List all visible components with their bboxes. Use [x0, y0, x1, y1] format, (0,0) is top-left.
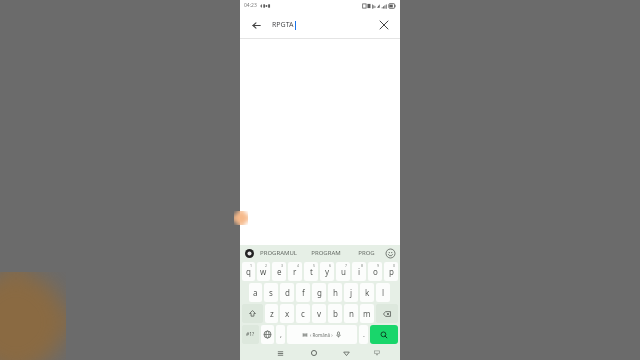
- button[interactable]: u: [336, 262, 350, 281]
- staticText: z: [270, 308, 274, 319]
- button[interactable]: o: [368, 262, 382, 281]
- button[interactable]: t: [304, 262, 318, 281]
- staticText: w: [260, 266, 267, 277]
- button[interactable]: e: [272, 262, 286, 281]
- button[interactable]: d: [280, 283, 294, 302]
- staticText: l: [382, 287, 385, 298]
- button[interactable]: ‹ Română ›: [287, 325, 357, 344]
- button[interactable]: p: [384, 262, 398, 281]
- staticText: x: [285, 308, 290, 319]
- button[interactable]: PROGRAMUL: [255, 245, 302, 261]
- staticText: PROGRAM: [311, 249, 341, 257]
- button[interactable]: #1?: [242, 325, 259, 344]
- button[interactable]: j: [344, 283, 358, 302]
- staticText: 0: [393, 263, 396, 268]
- staticText: RPGTA: [272, 20, 294, 30]
- button[interactable]: Recent apps: [264, 346, 297, 360]
- staticText: PROGRAMUL: [260, 249, 297, 257]
- staticText: #1?: [246, 331, 255, 338]
- staticText: p: [389, 266, 394, 277]
- button[interactable]: q: [242, 262, 255, 281]
- staticText: .: [363, 330, 365, 340]
- staticText: 4: [297, 263, 300, 268]
- button[interactable]: Change keyboard language: [261, 325, 274, 344]
- staticText: g: [317, 287, 322, 298]
- staticText: n: [349, 308, 354, 319]
- staticText: a: [253, 287, 258, 298]
- staticText: q: [246, 266, 251, 277]
- staticText: b: [333, 308, 338, 319]
- button[interactable]: g: [312, 283, 326, 302]
- staticText: 7: [345, 263, 348, 268]
- staticText: 04:23: [244, 2, 257, 9]
- button[interactable]: c: [296, 304, 310, 323]
- button[interactable]: n: [344, 304, 358, 323]
- staticText: k: [365, 287, 370, 298]
- button[interactable]: m: [360, 304, 374, 323]
- staticText: t: [310, 266, 313, 277]
- staticText: 5: [313, 263, 316, 268]
- staticText: 2: [265, 263, 268, 268]
- staticText: ,: [280, 330, 282, 340]
- button[interactable]: r: [288, 262, 302, 281]
- button[interactable]: Hide keyboard: [363, 346, 391, 360]
- button[interactable]: Search: [370, 325, 398, 344]
- button[interactable]: Back: [330, 346, 363, 360]
- staticText: 1: [250, 263, 253, 268]
- button[interactable]: s: [264, 283, 278, 302]
- button[interactable]: PROG: [349, 245, 384, 261]
- button[interactable]: .: [359, 325, 368, 344]
- staticText: 9: [377, 263, 380, 268]
- button[interactable]: Back: [246, 15, 266, 35]
- button[interactable]: i: [352, 262, 366, 281]
- button[interactable]: h: [328, 283, 342, 302]
- button[interactable]: Google: [243, 247, 255, 259]
- button[interactable]: Backspace: [376, 304, 398, 323]
- staticText: 6: [329, 263, 332, 268]
- staticText: v: [317, 308, 322, 319]
- button[interactable]: l: [376, 283, 390, 302]
- staticText: e: [277, 266, 282, 277]
- staticText: o: [373, 266, 378, 277]
- button[interactable]: w: [257, 262, 270, 281]
- staticText: u: [341, 266, 346, 277]
- button[interactable]: Shift: [242, 304, 263, 323]
- staticText: f: [302, 287, 305, 298]
- staticText: PROG: [358, 249, 375, 257]
- button[interactable]: PROGRAM: [302, 245, 349, 261]
- button[interactable]: k: [360, 283, 374, 302]
- button[interactable]: b: [328, 304, 342, 323]
- button[interactable]: a: [249, 283, 262, 302]
- button[interactable]: f: [296, 283, 310, 302]
- staticText: d: [285, 287, 290, 298]
- staticText: i: [358, 266, 361, 277]
- button[interactable]: v: [312, 304, 326, 323]
- staticText: h: [333, 287, 338, 298]
- staticText: 3: [281, 263, 284, 268]
- staticText: ‹ Română ›: [310, 332, 333, 338]
- staticText: m: [363, 308, 371, 319]
- button[interactable]: Clear: [374, 15, 394, 35]
- staticText: s: [269, 287, 273, 298]
- staticText: 8: [361, 263, 364, 268]
- staticText: r: [293, 266, 297, 277]
- button[interactable]: Emoji: [384, 247, 397, 260]
- other: Voice input: [335, 331, 342, 338]
- staticText: c: [301, 308, 305, 319]
- button[interactable]: y: [320, 262, 334, 281]
- staticText: y: [325, 266, 330, 277]
- button[interactable]: z: [265, 304, 278, 323]
- button[interactable]: Home: [297, 346, 330, 360]
- staticText: j: [350, 287, 353, 298]
- button[interactable]: x: [280, 304, 294, 323]
- button[interactable]: ,: [276, 325, 285, 344]
